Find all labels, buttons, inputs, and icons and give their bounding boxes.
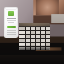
button[interactable]: Data table [19, 23, 50, 50]
button[interactable]: Continue [7, 26, 16, 28]
button[interactable]: Brand logo [8, 11, 14, 16]
